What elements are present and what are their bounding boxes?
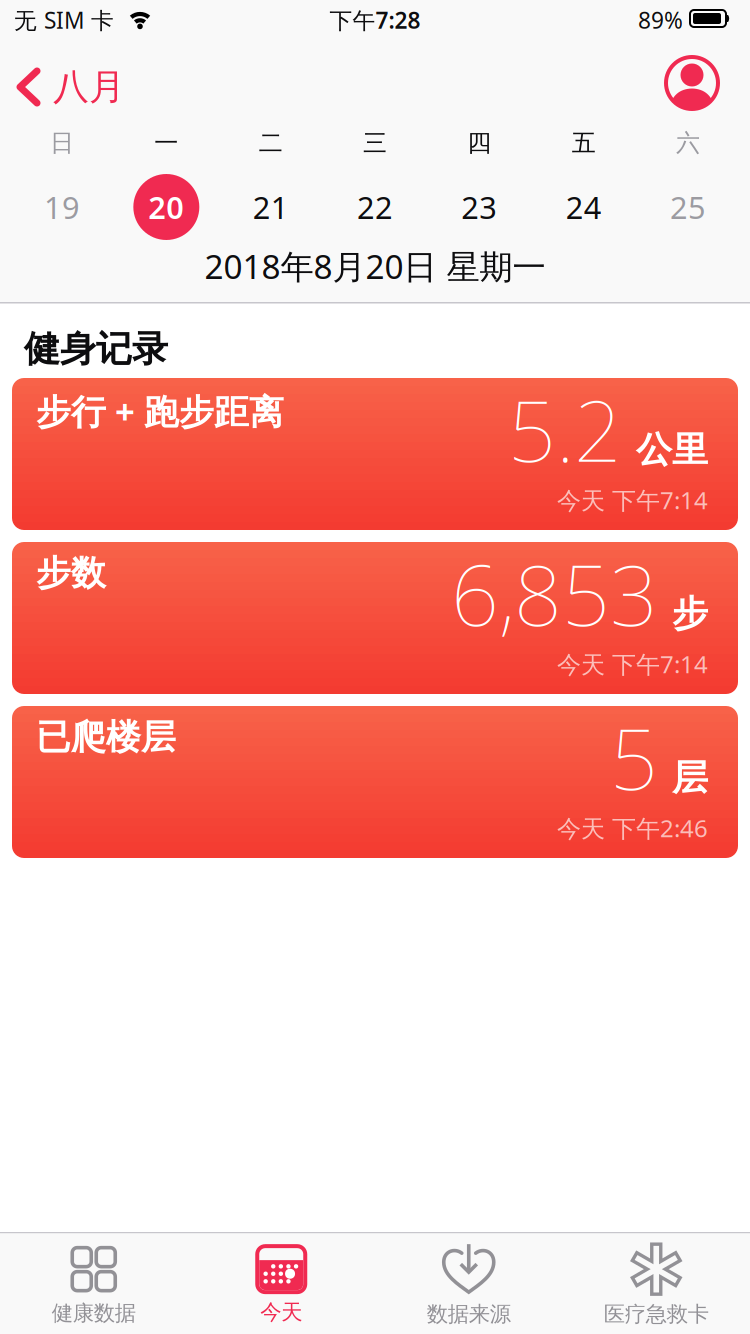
staticText: 今天 下午7:14 <box>557 648 708 680</box>
button[interactable]: 23 <box>427 174 531 240</box>
staticText: 层 <box>672 756 708 800</box>
button[interactable]: 返回八月 <box>16 64 125 110</box>
staticText: 步数 <box>36 552 106 595</box>
button[interactable]: 21 <box>219 174 323 240</box>
staticText: 今天 <box>260 1299 302 1325</box>
staticText: 无 SIM 卡 <box>14 5 114 35</box>
staticText: 一 <box>154 128 178 158</box>
staticText: 5 <box>610 701 658 813</box>
staticText: 已爬楼层 <box>36 716 176 759</box>
staticText: 日 <box>50 128 74 158</box>
staticText: 数据来源 <box>427 1301 511 1327</box>
button[interactable]: 已爬楼层 <box>12 706 738 858</box>
staticText: 五 <box>572 128 596 158</box>
staticText: 步 <box>672 592 708 636</box>
staticText: 6,853 <box>451 537 658 649</box>
button[interactable]: 20 <box>114 174 218 240</box>
button[interactable]: 数据来源 <box>375 1233 562 1334</box>
staticText: 医疗急救卡 <box>604 1301 709 1327</box>
staticText: 二 <box>259 128 283 158</box>
staticText: 24 <box>566 187 602 227</box>
staticText: 25 <box>670 187 706 227</box>
staticText: 六 <box>676 128 700 158</box>
button[interactable]: 22 <box>323 174 427 240</box>
staticText: 四 <box>467 128 491 158</box>
staticText: 八月 <box>53 65 125 109</box>
staticText: 公里 <box>636 428 708 472</box>
staticText: 健身记录 <box>24 327 168 371</box>
staticText: 步行 + 跑步距离 <box>36 388 284 434</box>
staticText: 5.2 <box>508 373 622 485</box>
staticText: 21 <box>253 187 289 227</box>
staticText: 19 <box>44 187 80 227</box>
staticText: 2018年8月20日 星期一 <box>204 244 545 288</box>
button[interactable]: 25 <box>636 174 740 240</box>
staticText: 22 <box>357 187 393 227</box>
button[interactable]: 医疗急救卡 <box>562 1233 750 1334</box>
button[interactable]: 个人资料 <box>666 57 718 109</box>
staticText: 三 <box>363 128 387 158</box>
staticText: 23 <box>461 187 497 227</box>
button[interactable]: 19 <box>10 174 114 240</box>
staticText: 今天 下午2:46 <box>557 812 708 844</box>
button[interactable]: 步数 <box>12 542 738 694</box>
staticText: 健康数据 <box>52 1300 136 1326</box>
button[interactable]: 步行 + 跑步距离 <box>12 378 738 530</box>
staticText: 今天 下午7:14 <box>557 484 708 516</box>
staticText: 20 <box>148 187 184 227</box>
button[interactable]: 今天 <box>187 1233 375 1334</box>
staticText: 下午7:28 <box>329 5 420 35</box>
staticText: 89% <box>638 5 683 35</box>
button[interactable]: 24 <box>532 174 636 240</box>
button[interactable]: 健康数据 <box>0 1233 187 1334</box>
